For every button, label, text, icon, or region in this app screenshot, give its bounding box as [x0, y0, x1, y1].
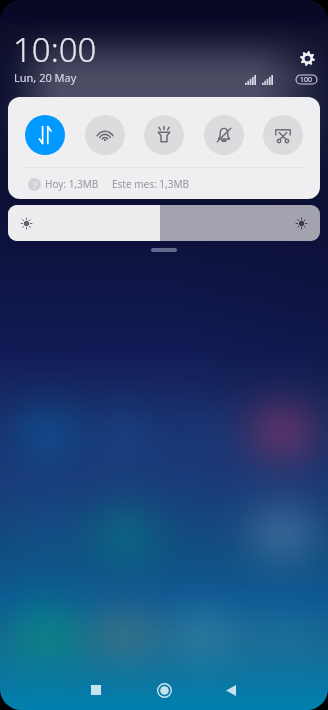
staticText: 100: [300, 75, 313, 84]
button[interactable]: Silent mode: [204, 115, 244, 155]
button[interactable]: Mobile data: [25, 115, 65, 155]
button[interactable]: Flashlight: [144, 115, 184, 155]
button[interactable]: Home: [142, 668, 186, 710]
staticText: 10:00: [13, 27, 97, 72]
button[interactable]: Wi-Fi: [85, 115, 125, 155]
button[interactable]: Settings: [294, 45, 321, 72]
staticText: Hoy: 1,3MB: [45, 177, 99, 191]
button[interactable]: Back: [209, 668, 253, 710]
button[interactable]: Brightness: [8, 205, 320, 241]
button[interactable]: Recents: [74, 668, 118, 710]
staticText: ?: [33, 179, 37, 191]
staticText: Lun, 20 May: [14, 70, 77, 85]
button[interactable]: Screenshot: [263, 115, 303, 155]
staticText: Este mes: 1,3MB: [112, 177, 189, 191]
